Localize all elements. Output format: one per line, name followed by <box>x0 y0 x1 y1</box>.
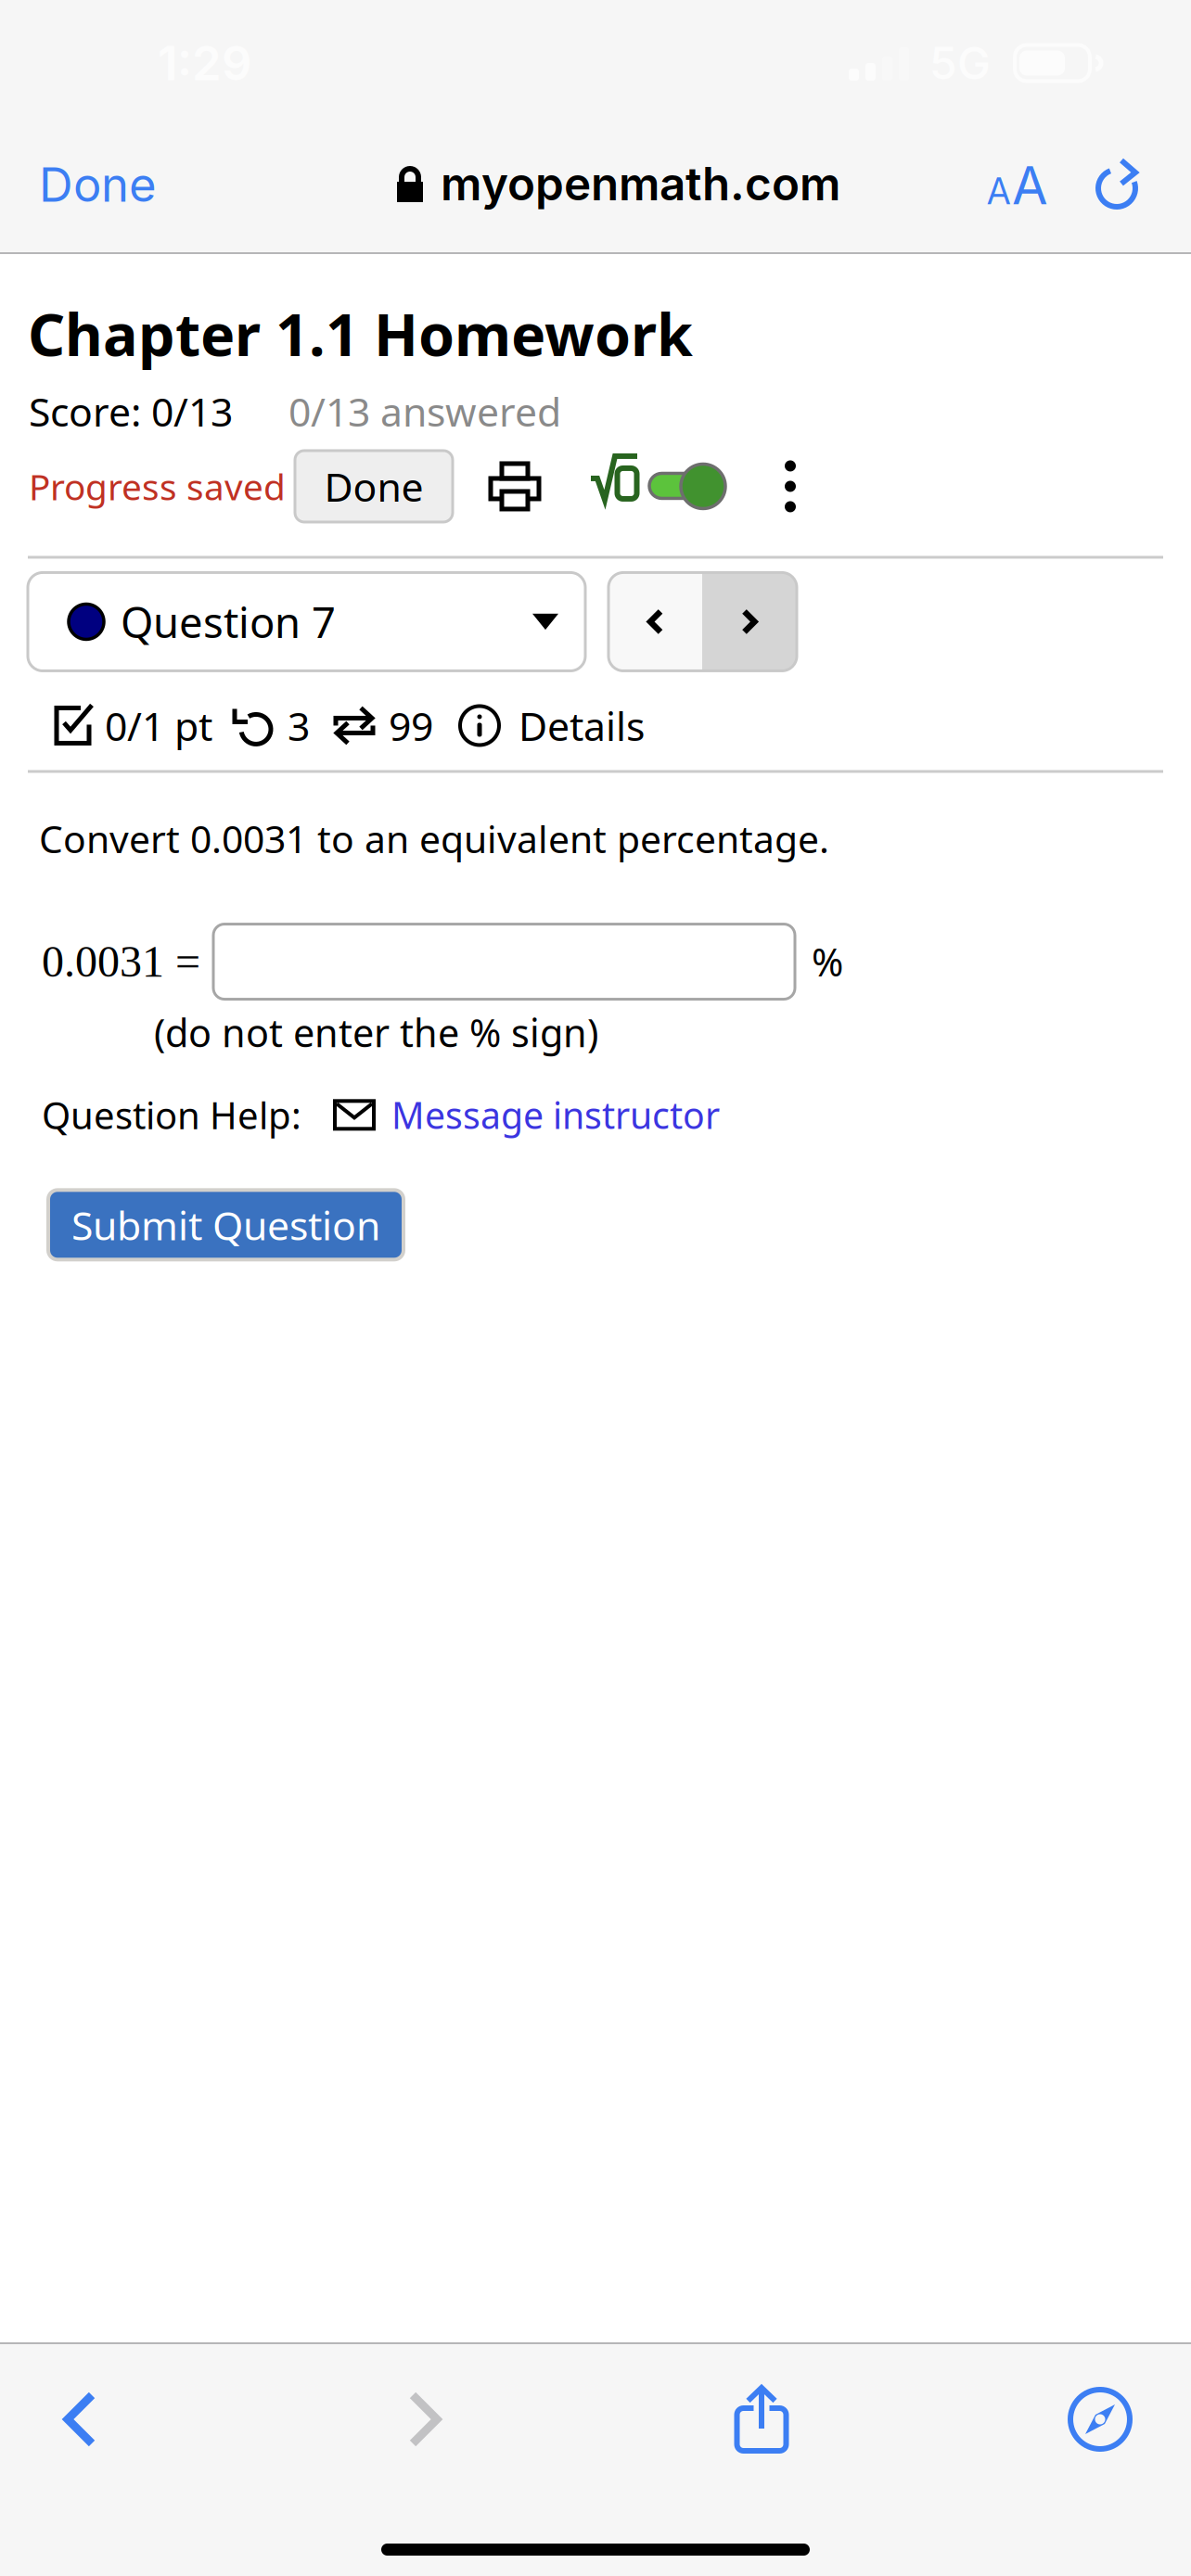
staticText: Question Help: <box>42 1090 301 1140</box>
staticText: Question 7 <box>121 593 336 650</box>
staticText: 0/1 pt <box>105 699 212 752</box>
staticText: (do not enter the % sign) <box>154 1006 598 1058</box>
button[interactable]: More options <box>761 457 820 516</box>
button[interactable]: Done <box>0 126 185 252</box>
staticText: A <box>1012 154 1048 217</box>
staticText: 99 <box>389 699 433 752</box>
staticText: 0/13 answered <box>288 384 561 438</box>
staticText: Message instructor <box>391 1090 720 1140</box>
staticText: myopenmath.com <box>441 156 840 211</box>
button[interactable]: Open in Safari <box>1020 2376 1180 2463</box>
staticText: 0.0031 = <box>42 937 200 986</box>
staticText: Done <box>324 459 423 513</box>
button[interactable]: Toggle math entry palette <box>588 462 725 511</box>
button[interactable]: Reload <box>1070 126 1167 252</box>
staticText: Submit Question <box>71 1198 380 1252</box>
staticText: Details <box>519 699 645 752</box>
staticText: Convert 0.0031 to an equivalent percenta… <box>39 813 829 864</box>
staticText: Progress saved <box>29 462 286 511</box>
button[interactable]: Text size <box>965 126 1070 252</box>
staticText: Done <box>39 156 157 213</box>
button[interactable]: Done <box>295 451 453 522</box>
button[interactable]: Next question <box>702 573 797 671</box>
staticText: A <box>987 170 1010 213</box>
staticText: 3 <box>288 699 310 752</box>
button[interactable]: Question 7 <box>28 573 585 671</box>
button[interactable]: Submit Question <box>48 1190 403 1260</box>
staticText: % <box>812 936 843 988</box>
staticText: Score: 0/13 <box>29 384 233 438</box>
button[interactable]: Message instructor <box>332 1090 720 1140</box>
button[interactable]: Share <box>682 2376 841 2463</box>
button[interactable]: Print <box>488 461 542 512</box>
button[interactable]: Forward <box>345 2376 505 2463</box>
button[interactable]: Back <box>0 2376 160 2463</box>
button[interactable]: Previous question <box>608 573 702 671</box>
staticText: Chapter 1.1 Homework <box>28 294 693 373</box>
